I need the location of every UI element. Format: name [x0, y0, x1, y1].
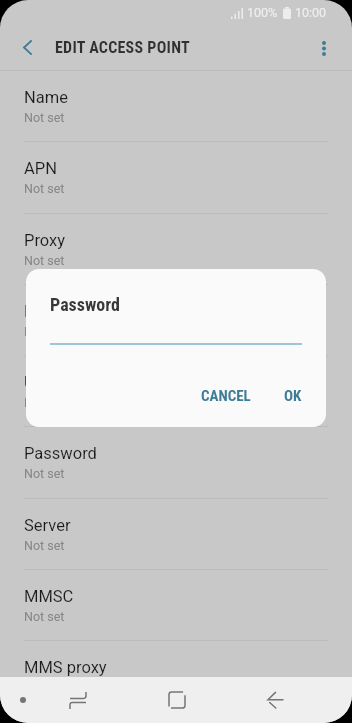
button[interactable]: Password — [0, 427, 352, 498]
staticText: Port — [24, 302, 56, 321]
staticText: Proxy — [24, 231, 66, 250]
button[interactable]: Port — [0, 285, 352, 355]
staticText: EDIT ACCESS POINT — [55, 38, 190, 57]
staticText: 10:00 — [295, 5, 327, 20]
button[interactable]: Back — [226, 677, 325, 723]
staticText: MMSC — [24, 587, 74, 606]
button[interactable]: More options — [304, 28, 344, 68]
staticText: Not set — [24, 324, 65, 339]
button[interactable]: APN — [0, 142, 352, 213]
staticText: Not set — [24, 395, 65, 410]
staticText: Name — [24, 88, 68, 107]
staticText: Server — [24, 516, 71, 535]
button[interactable]: Server — [0, 499, 352, 569]
button[interactable]: Home — [127, 677, 226, 723]
staticText: MMS proxy — [24, 658, 107, 677]
button[interactable]: MMSC — [0, 570, 352, 640]
staticText: OK — [284, 387, 302, 405]
button[interactable]: Recents — [29, 677, 127, 723]
staticText: Not set — [24, 253, 65, 268]
staticText: Not set — [24, 110, 65, 125]
staticText: Not set — [24, 466, 65, 481]
staticText: Password — [24, 444, 97, 463]
button[interactable]: Navigate up — [8, 29, 45, 66]
staticText: Not set — [24, 181, 65, 196]
staticText: Not set — [24, 538, 65, 553]
button[interactable]: Name — [0, 71, 352, 141]
staticText: 100% — [247, 5, 278, 20]
button[interactable]: OK — [278, 380, 308, 412]
staticText: CANCEL — [201, 387, 251, 405]
staticText: Password — [50, 294, 121, 315]
button[interactable]: Username — [0, 356, 352, 426]
staticText: APN — [24, 159, 57, 178]
button[interactable]: Proxy — [0, 214, 352, 284]
button[interactable]: CANCEL — [195, 380, 257, 412]
staticText: Not set — [24, 609, 65, 624]
button[interactable]: MMS proxy — [0, 641, 352, 712]
staticText: Username — [24, 373, 99, 392]
